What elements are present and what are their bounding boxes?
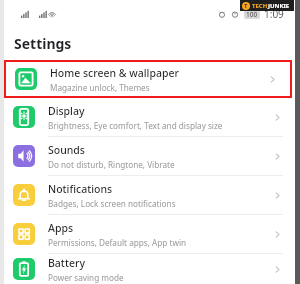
button[interactable]: Home screen & wallpaper — [6, 62, 290, 96]
button[interactable]: Apps — [4, 215, 295, 253]
button[interactable]: Notifications — [4, 176, 295, 214]
staticText: Power saving mode — [48, 272, 124, 283]
staticText: 100 — [246, 10, 258, 19]
staticText: Display — [48, 104, 85, 118]
staticText: Notifications — [48, 182, 113, 196]
staticText: T — [244, 2, 248, 10]
button[interactable]: Sounds — [4, 137, 295, 175]
staticText: Magazine unlock, Themes — [50, 82, 150, 93]
other: TechJunkie watermark — [240, 0, 294, 11]
staticText: Sounds — [48, 143, 85, 157]
staticText: JUNKIE — [268, 2, 290, 10]
staticText: Permissions, Default apps, App twin — [48, 237, 187, 248]
staticText: Settings — [14, 34, 72, 53]
staticText: 1:09 — [264, 7, 284, 21]
staticText: Do not disturb, Ringtone, Vibrate — [48, 159, 175, 170]
staticText: Apps — [48, 221, 74, 235]
button[interactable]: Battery — [4, 254, 295, 284]
staticText: Battery — [48, 256, 85, 270]
button[interactable]: Display — [4, 98, 295, 136]
staticText: Badges, Lock screen notifications — [48, 198, 176, 209]
staticText: Brightness, Eye comfort, Text and displa… — [48, 120, 223, 131]
staticText: TECH — [252, 2, 268, 10]
staticText: Home screen & wallpaper — [50, 66, 179, 80]
